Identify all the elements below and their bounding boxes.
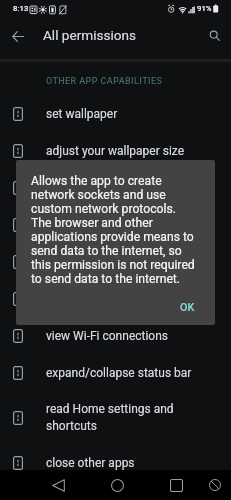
button[interactable]: change network connectivity: [0, 280, 231, 317]
button[interactable]: Do not disturb: [203, 470, 227, 500]
staticText: connect and disconnect from Wi-Fi: [46, 246, 201, 277]
staticText: set wallpaper: [46, 107, 118, 121]
staticText: view network connections: [46, 218, 185, 232]
button[interactable]: Home: [105, 470, 129, 500]
staticText: read Home settings and shortcuts: [46, 402, 201, 433]
staticText: All permissions: [43, 27, 137, 43]
staticText: close other apps: [46, 456, 135, 470]
staticText: 8:13: [13, 4, 29, 13]
button[interactable]: Recent apps: [164, 470, 188, 500]
button[interactable]: view network connections: [0, 206, 231, 243]
button[interactable]: Search: [203, 24, 227, 48]
staticText: adjust your wallpaper size: [46, 144, 185, 158]
staticText: change network connectivity: [46, 292, 199, 306]
staticText: OTHER APP CAPABILITIES: [46, 76, 163, 87]
button[interactable]: OK: [170, 294, 205, 321]
button[interactable]: expand/collapse status bar: [0, 354, 231, 391]
button[interactable]: Back: [46, 470, 70, 500]
button[interactable]: set wallpaper: [0, 95, 231, 132]
button[interactable]: full network access: [0, 169, 231, 206]
button[interactable]: view Wi-Fi connections: [0, 317, 231, 354]
staticText: view Wi-Fi connections: [46, 329, 169, 343]
button[interactable]: adjust your wallpaper size: [0, 132, 231, 169]
staticText: expand/collapse status bar: [46, 366, 192, 380]
staticText: OK: [180, 301, 195, 314]
staticText: 91%: [197, 4, 212, 13]
staticText: Allows the app to create network sockets…: [31, 174, 196, 286]
button[interactable]: connect and disconnect from Wi-Fi: [0, 243, 231, 280]
button[interactable]: Navigate up: [6, 24, 30, 48]
button[interactable]: read Home settings and shortcuts: [0, 391, 231, 444]
staticText: full network access: [46, 181, 150, 195]
button[interactable]: close other apps: [0, 444, 231, 481]
